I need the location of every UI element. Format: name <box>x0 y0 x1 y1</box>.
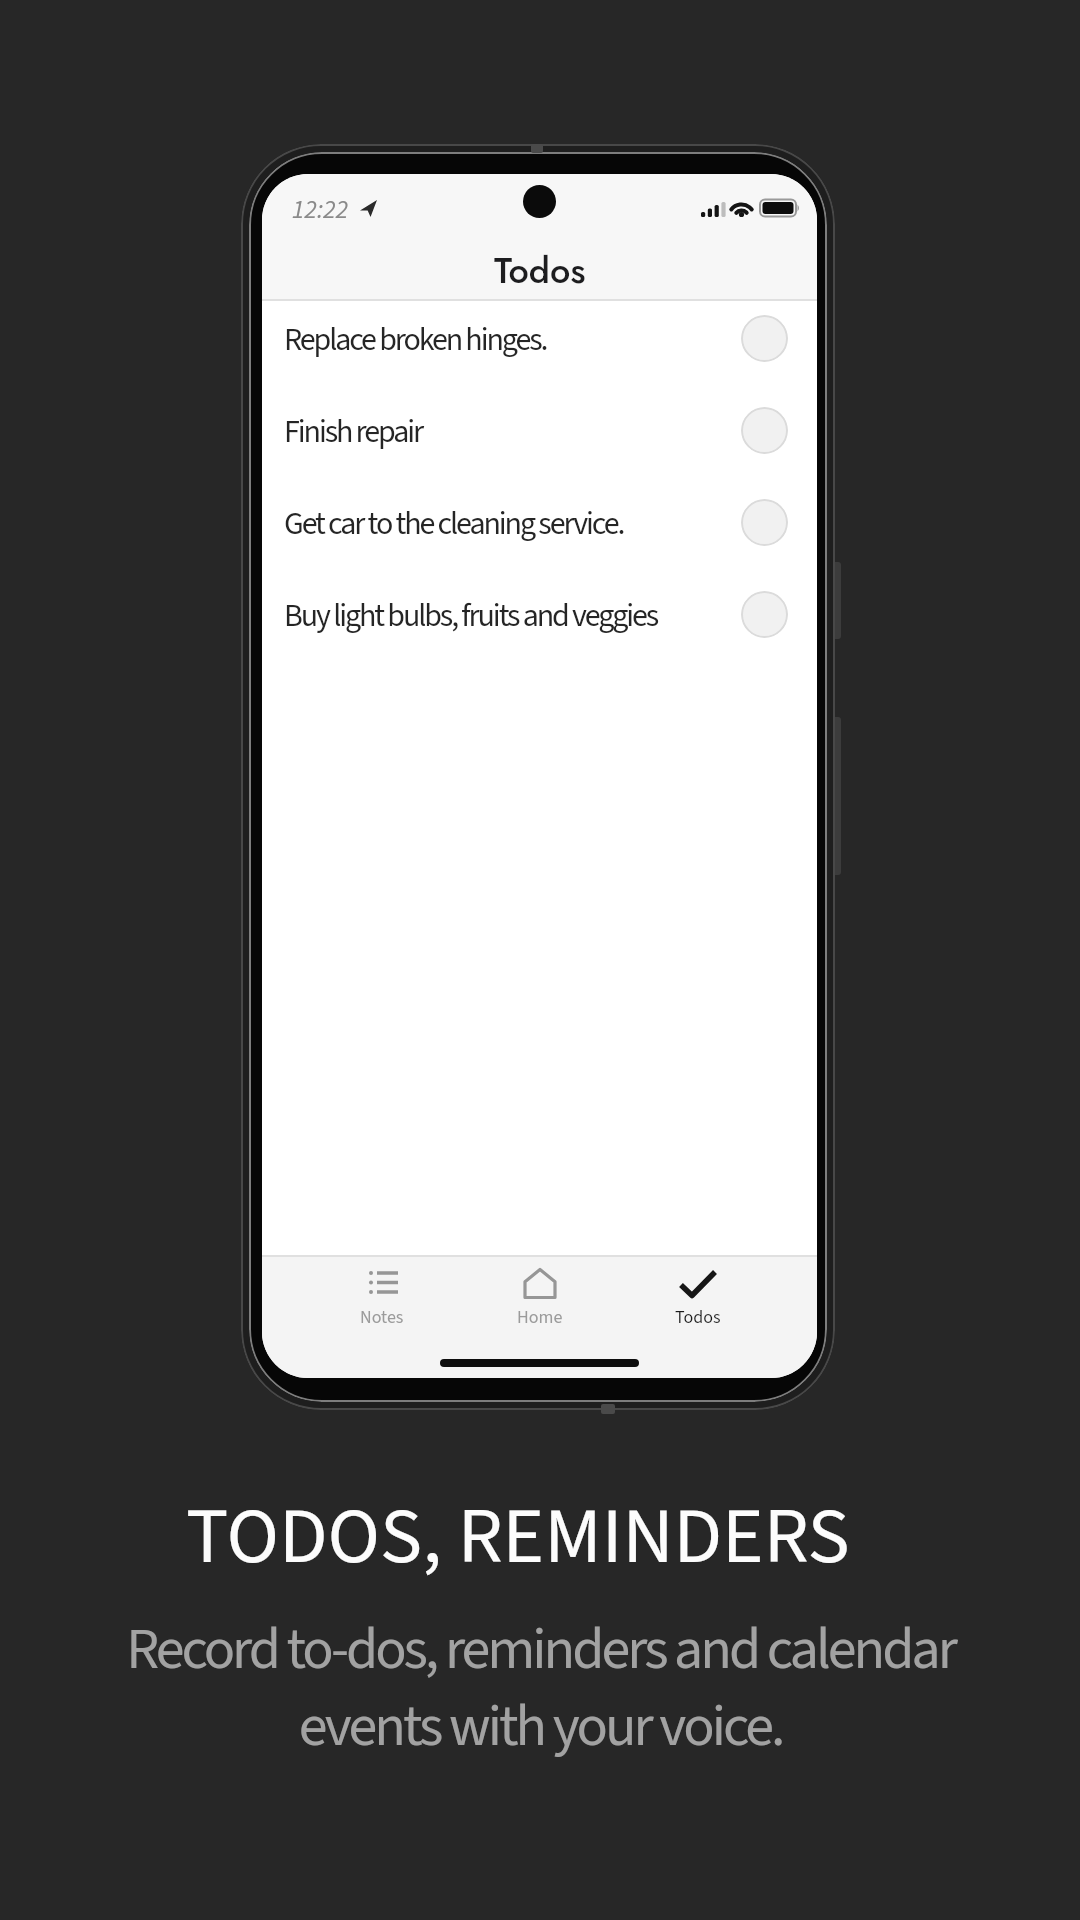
staticText: Notes <box>360 1305 404 1331</box>
button[interactable] <box>741 499 788 546</box>
staticText: Finish repair <box>284 409 423 455</box>
staticText: Buy light bulbs, fruits and veggies <box>284 593 658 639</box>
button[interactable]: Get car to the cleaning service. <box>262 478 817 570</box>
button[interactable] <box>741 315 788 362</box>
staticText: Todos <box>675 1305 721 1331</box>
staticText: Home <box>517 1305 563 1331</box>
button[interactable]: Buy light bulbs, fruits and veggies <box>262 570 817 662</box>
staticText: Todos <box>494 244 586 296</box>
staticText: Record to-dos, reminders and calendar ev… <box>126 1609 955 1769</box>
button[interactable]: Finish repair <box>262 386 817 478</box>
staticText: 12:22 <box>292 191 349 225</box>
button[interactable] <box>741 407 788 454</box>
staticText: Get car to the cleaning service. <box>284 501 624 547</box>
button[interactable]: Replace broken hinges. <box>262 294 817 386</box>
staticText: TODOS, REMINDERS <box>186 1481 850 1593</box>
button[interactable]: Home <box>461 1257 619 1331</box>
staticText: Replace broken hinges. <box>284 317 547 363</box>
button[interactable]: Notes <box>303 1257 461 1331</box>
button[interactable] <box>741 591 788 638</box>
button[interactable]: Todos <box>619 1257 777 1331</box>
